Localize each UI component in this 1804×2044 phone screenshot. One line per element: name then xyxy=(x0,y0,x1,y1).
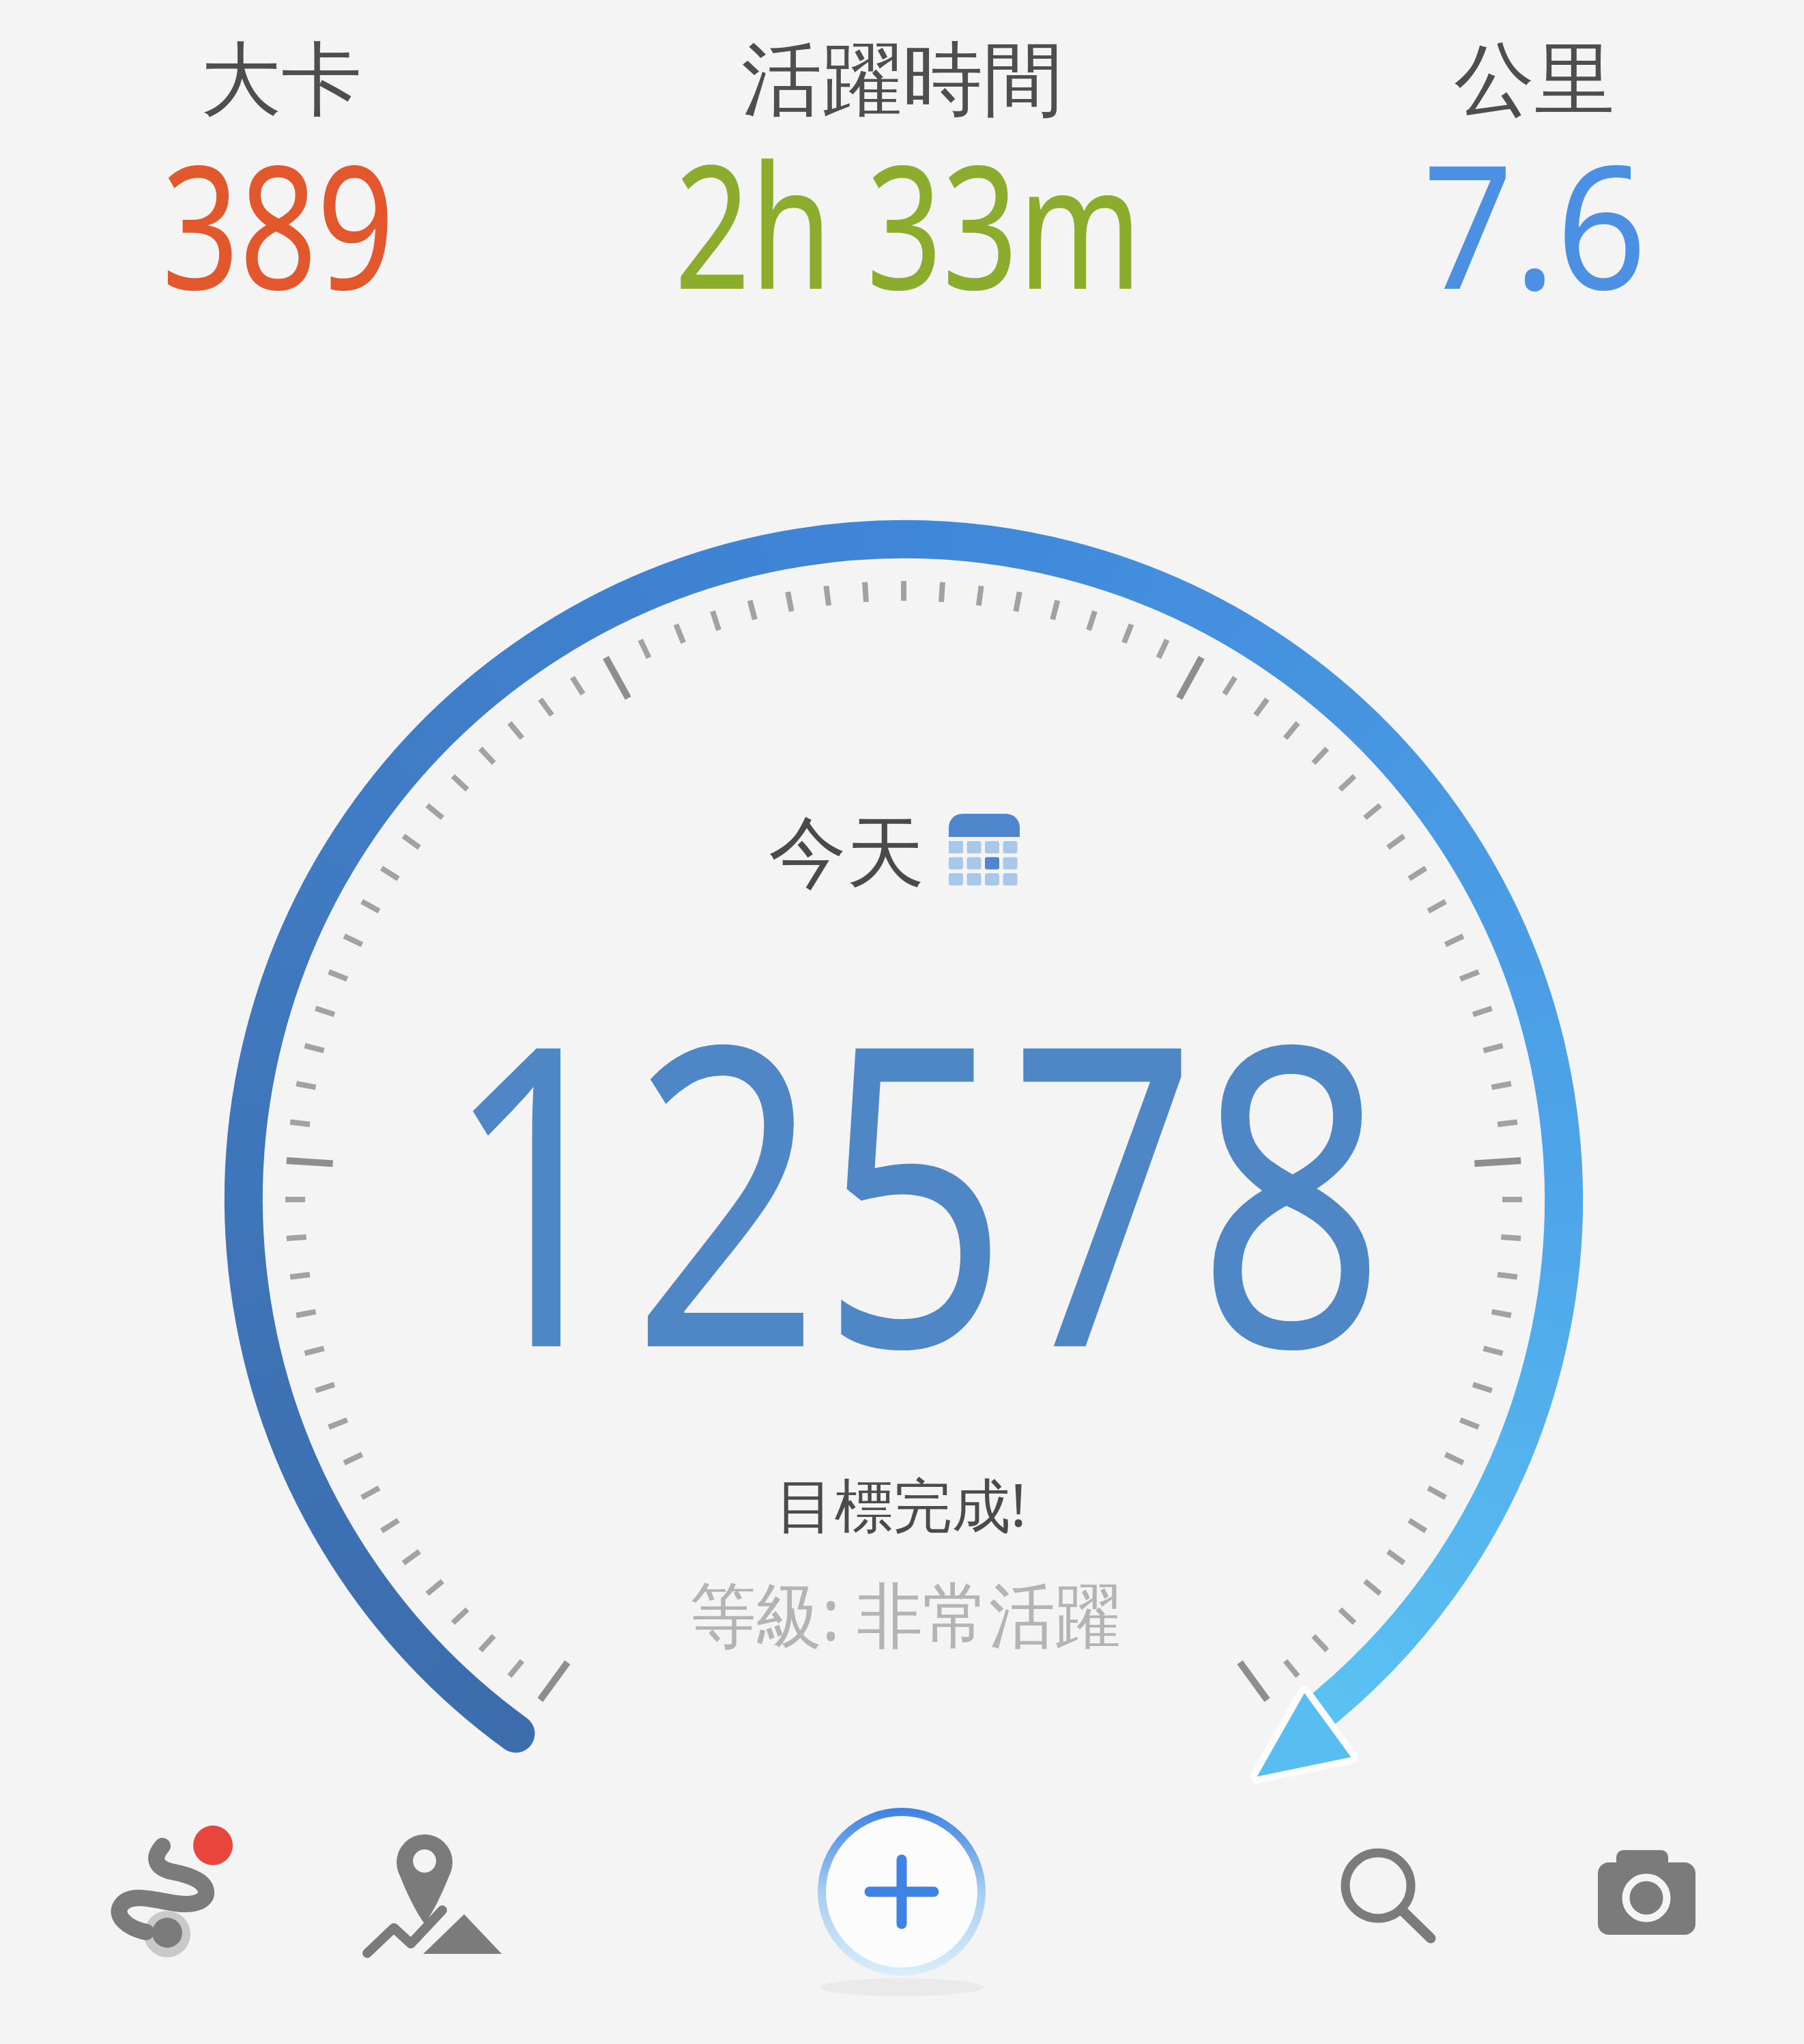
staticText: 389 xyxy=(162,107,395,339)
button[interactable]: 今天 xyxy=(300,649,1392,1058)
button[interactable] xyxy=(1551,1803,1728,1981)
button[interactable] xyxy=(1289,1803,1467,1981)
staticText: 今天 xyxy=(769,804,924,903)
staticText: 公里 xyxy=(1454,29,1615,131)
staticText: 7.6 xyxy=(1423,107,1647,339)
staticText: 大卡 xyxy=(201,29,362,131)
staticText: 12578 xyxy=(443,900,1386,1468)
button[interactable] xyxy=(336,1802,513,1980)
button[interactable] xyxy=(813,1803,990,1981)
button[interactable] xyxy=(78,1802,256,1980)
staticText: 等級: 非常活躍 xyxy=(690,1565,1121,1662)
staticText: 活躍時間 xyxy=(741,29,1063,131)
staticText: 2h 33m xyxy=(674,107,1142,339)
staticText: 目標完成! xyxy=(775,1464,1027,1544)
